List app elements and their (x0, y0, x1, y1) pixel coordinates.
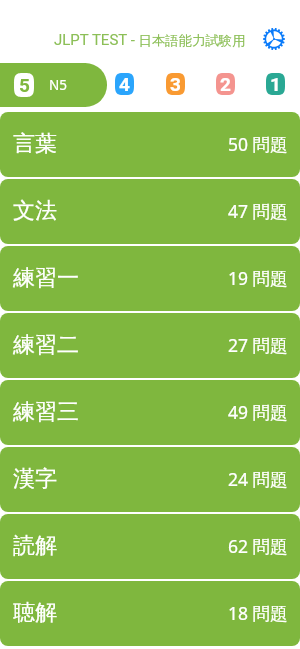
button[interactable]: 聴解 (0, 581, 300, 646)
button[interactable]: 練習一 (0, 246, 300, 311)
button[interactable]: 練習三 (0, 380, 300, 445)
staticText: 62 問題 (228, 534, 288, 558)
staticText: JLPT TEST - 日本語能力試験用 (54, 31, 246, 49)
staticText: 練習三 (13, 398, 79, 426)
staticText: 24 問題 (228, 467, 288, 491)
button[interactable]: 3 (166, 73, 185, 95)
staticText: 練習一 (13, 264, 79, 292)
button[interactable]: 1 (266, 73, 285, 95)
staticText: 1 (270, 73, 281, 95)
staticText: 漢字 (13, 465, 57, 493)
button[interactable]: 言葉 (0, 112, 300, 177)
button[interactable]: 練習二 (0, 313, 300, 378)
staticText: 2 (220, 73, 231, 95)
staticText: N5 (49, 76, 67, 94)
staticText: 18 問題 (228, 601, 288, 625)
staticText: 4 (119, 73, 130, 95)
staticText: 文法 (13, 197, 57, 225)
staticText: 27 問題 (228, 333, 288, 357)
staticText: 47 問題 (228, 199, 288, 223)
button[interactable]: 文法 (0, 179, 300, 244)
staticText: 3 (170, 73, 181, 95)
button[interactable]: 4 (115, 73, 134, 95)
staticText: 練習二 (13, 331, 79, 359)
staticText: 読解 (13, 532, 57, 560)
button[interactable]: 2 (216, 73, 235, 95)
staticText: 5 (19, 74, 30, 96)
staticText: 聴解 (13, 599, 57, 627)
button[interactable]: Settings (258, 23, 290, 55)
staticText: 19 問題 (228, 266, 288, 290)
button[interactable]: 漢字 (0, 447, 300, 512)
button[interactable]: 読解 (0, 514, 300, 579)
staticText: 50 問題 (228, 132, 288, 156)
staticText: 49 問題 (228, 400, 288, 424)
button[interactable]: 5 (0, 63, 107, 107)
staticText: 言葉 (13, 130, 57, 158)
